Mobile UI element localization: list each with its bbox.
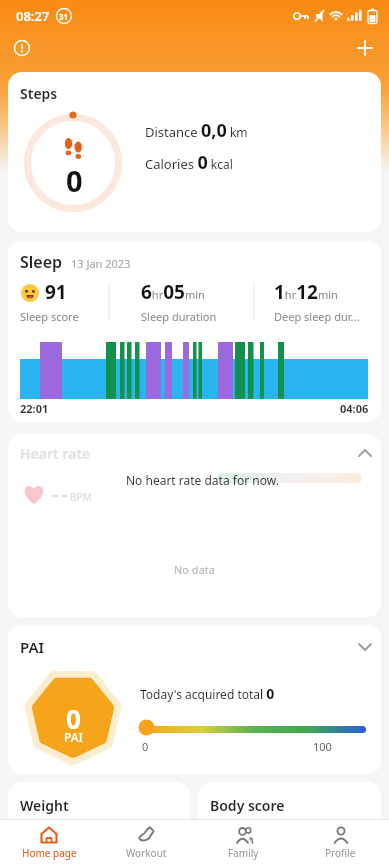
staticText: Sleep duration xyxy=(141,309,217,324)
button[interactable]: Heart rate xyxy=(8,434,381,617)
staticText: 31 xyxy=(59,11,69,22)
staticText: 22:01 xyxy=(20,401,49,416)
staticText: 04:06 xyxy=(340,401,369,416)
staticText: Today's acquired total 0 xyxy=(140,684,275,703)
staticText: PAI xyxy=(20,637,45,657)
staticText: Body score xyxy=(210,796,285,815)
button[interactable]: Weight xyxy=(8,782,190,842)
button[interactable]: Workout xyxy=(98,820,195,864)
staticText: Profile xyxy=(325,846,356,860)
staticText: Distance 0,0 km xyxy=(145,118,248,143)
staticText: Home page xyxy=(22,846,77,860)
staticText: Sleep score xyxy=(20,309,79,324)
staticText: 0 xyxy=(66,701,81,729)
staticText: Steps xyxy=(20,84,58,103)
button[interactable]: Steps xyxy=(8,72,381,232)
staticText: 91 xyxy=(45,279,67,305)
button[interactable]: Home page xyxy=(0,820,98,864)
staticText: 08:27 xyxy=(16,7,50,25)
staticText: 0 xyxy=(142,739,149,754)
staticText: 0 xyxy=(66,161,83,192)
button[interactable] xyxy=(353,36,377,60)
button[interactable] xyxy=(10,36,34,60)
staticText: Weight xyxy=(20,796,69,815)
button[interactable]: Profile xyxy=(292,820,389,864)
button[interactable]: Family xyxy=(195,820,292,864)
staticText: Heart rate xyxy=(20,444,91,463)
staticText: Sleep xyxy=(20,251,63,273)
staticText: Family xyxy=(228,846,259,860)
staticText: Workout xyxy=(126,846,167,860)
staticText: 13 Jan 2023 xyxy=(71,256,131,271)
staticText: 6hr05min xyxy=(141,279,205,305)
staticText: Deep sleep dur... xyxy=(274,309,360,324)
staticText: No heart rate data for now. xyxy=(126,472,279,488)
staticText: BPM xyxy=(70,490,92,504)
staticText: 100 xyxy=(313,739,332,754)
button[interactable]: Body score xyxy=(198,782,381,842)
staticText: Calories 0 kcal xyxy=(145,150,233,175)
staticText: No data xyxy=(174,562,215,577)
staticText: PAI xyxy=(64,729,83,745)
staticText: 1hr12min xyxy=(274,279,338,305)
button[interactable]: PAI xyxy=(8,625,381,774)
button[interactable]: Sleep xyxy=(8,241,381,422)
